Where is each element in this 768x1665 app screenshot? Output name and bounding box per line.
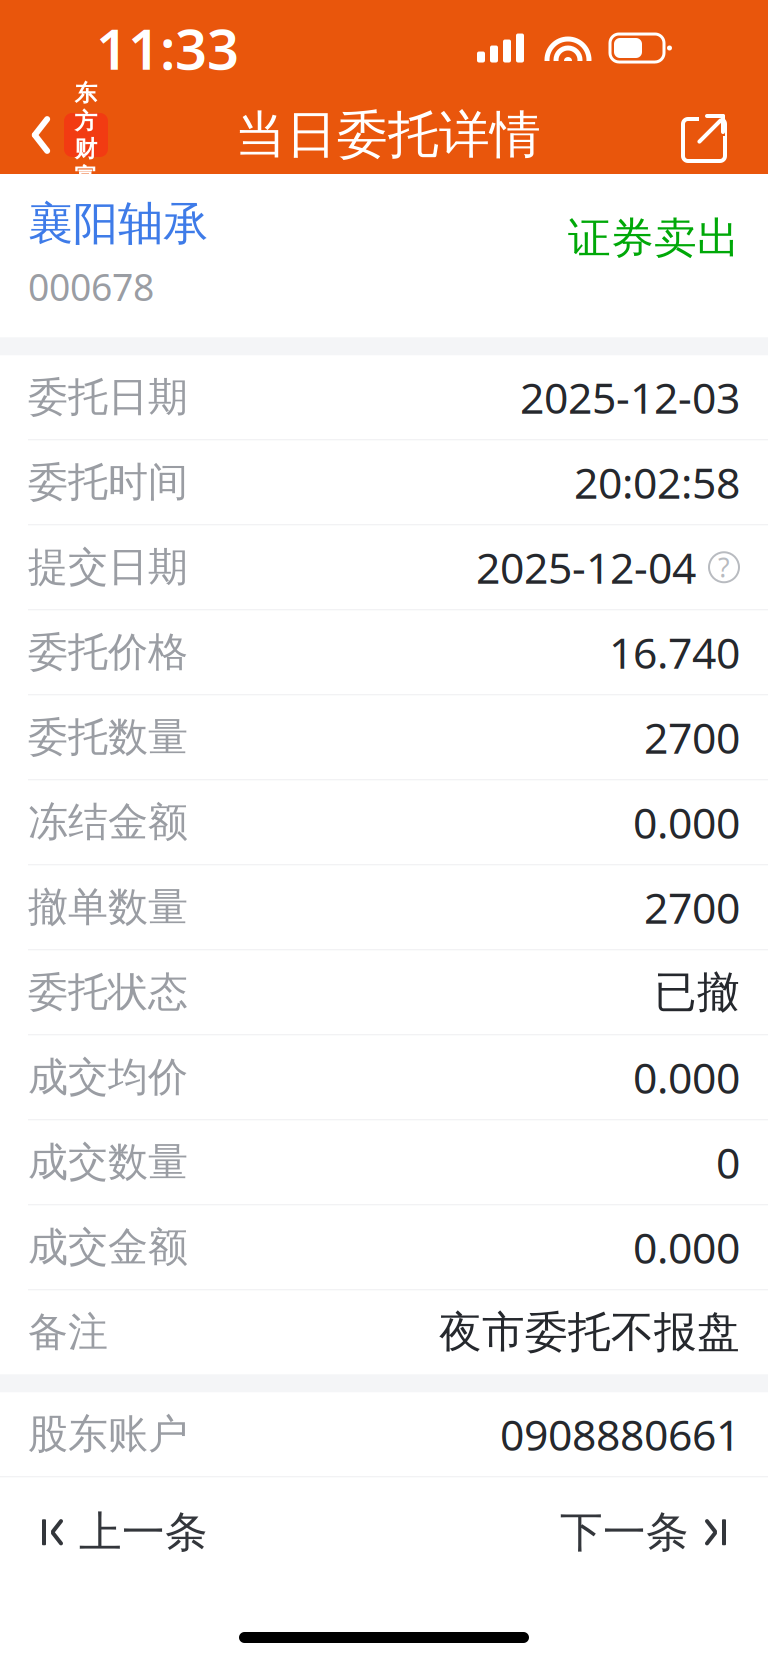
- staticText: 2700: [644, 709, 740, 766]
- staticText: 冻结金额: [28, 798, 188, 847]
- staticText: 2025-12-03: [520, 369, 740, 426]
- staticText: ?: [718, 550, 730, 585]
- staticText: 股东账户: [28, 1410, 188, 1459]
- staticText: 11:33: [96, 11, 239, 85]
- staticText: 委托价格: [28, 628, 188, 677]
- staticText: 0.000: [633, 1219, 740, 1276]
- staticText: 东方: [74, 79, 97, 135]
- button[interactable]: 分享: [650, 97, 758, 173]
- staticText: 财富: [74, 135, 97, 191]
- staticText: 0908880661: [500, 1406, 740, 1463]
- staticText: 夜市委托不报盘: [439, 1306, 740, 1358]
- staticText: 当日委托详情: [235, 104, 541, 166]
- staticText: 撤单数量: [28, 883, 188, 932]
- staticText: 证券卖出: [568, 212, 740, 264]
- staticText: 提交日期: [28, 543, 188, 592]
- staticText: 委托数量: [28, 713, 188, 762]
- staticText: 0.000: [633, 794, 740, 851]
- staticText: 委托时间: [28, 458, 188, 507]
- staticText: 已撤: [654, 966, 740, 1018]
- staticText: 20:02:58: [574, 454, 740, 511]
- button[interactable]: 返回东方财富: [10, 97, 126, 173]
- staticText: 成交金额: [28, 1223, 188, 1272]
- staticText: 上一条: [79, 1506, 208, 1558]
- staticText: 成交均价: [28, 1053, 188, 1102]
- staticText: 0.000: [633, 1049, 740, 1106]
- staticText: 委托状态: [28, 968, 188, 1017]
- staticText: 000678: [28, 262, 154, 311]
- staticText: 0: [716, 1134, 740, 1191]
- button[interactable]: 下一条: [518, 1477, 768, 1587]
- staticText: 成交数量: [28, 1138, 188, 1187]
- button[interactable]: 上一条: [0, 1477, 250, 1587]
- staticText: 16.740: [609, 624, 740, 681]
- staticText: 2025-12-04: [476, 539, 696, 596]
- staticText: 2700: [644, 879, 740, 936]
- staticText: 襄阳轴承: [28, 196, 208, 252]
- staticText: 下一条: [560, 1506, 689, 1558]
- staticText: 委托日期: [28, 373, 188, 422]
- staticText: 备注: [28, 1308, 108, 1357]
